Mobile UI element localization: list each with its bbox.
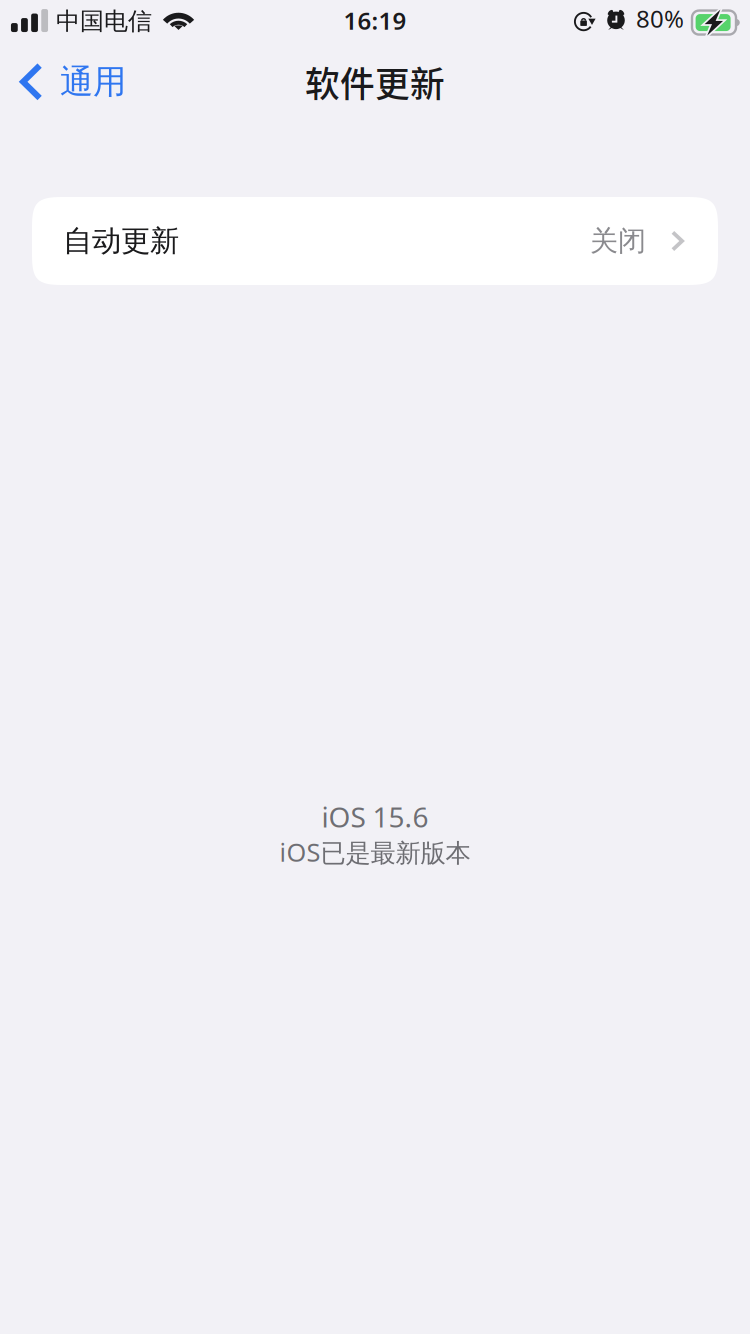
staticText: 16:19 [343,5,406,36]
button[interactable]: 自动更新 [32,197,718,285]
button[interactable]: 通用 [0,44,140,120]
staticText: iOS已是最新版本 [279,835,470,869]
staticText: 通用 [60,61,126,102]
staticText: 自动更新 [63,223,179,259]
staticText: 80% [636,3,684,34]
staticText: 关闭 [590,224,646,258]
staticText: 软件更新 [305,57,445,107]
staticText: 中国电信 [56,7,152,36]
staticText: iOS 15.6 [321,798,428,835]
